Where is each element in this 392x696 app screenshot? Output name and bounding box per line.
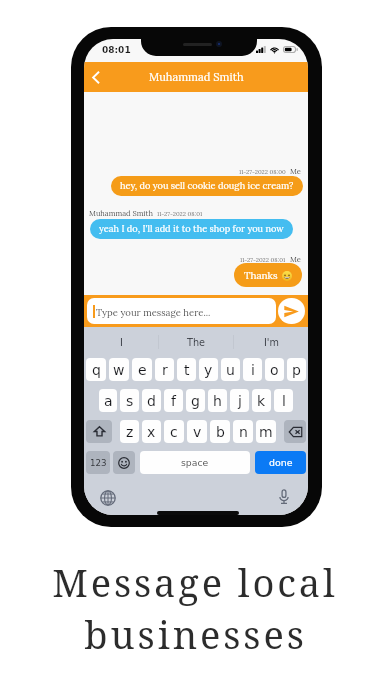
button[interactable]: z: [120, 420, 139, 443]
staticText: 11-27-2022 08:01: [240, 256, 286, 264]
button[interactable]: s: [120, 389, 139, 412]
staticText: Muhammad Smith: [89, 208, 153, 218]
staticText: k: [257, 393, 266, 409]
staticText: g: [191, 393, 200, 409]
other: Shift: [94, 426, 105, 437]
staticText: I'm: [264, 337, 279, 348]
staticText: done: [269, 457, 293, 468]
button[interactable]: Type your message here...: [87, 298, 276, 324]
staticText: y: [204, 362, 213, 378]
button[interactable]: r: [155, 358, 174, 381]
staticText: u: [226, 362, 235, 378]
staticText: a: [104, 393, 113, 409]
button[interactable]: y: [199, 358, 218, 381]
button[interactable]: i: [243, 358, 262, 381]
button[interactable]: l: [274, 389, 293, 412]
button[interactable]: g: [186, 389, 205, 412]
button[interactable]: Backspace: [284, 420, 306, 443]
button[interactable]: done: [255, 451, 306, 474]
staticText: Message local: [52, 556, 338, 608]
button[interactable]: x: [142, 420, 161, 443]
staticText: p: [292, 362, 301, 378]
staticText: m: [259, 424, 273, 440]
button[interactable]: t: [177, 358, 196, 381]
button[interactable]: Send: [278, 298, 305, 324]
button[interactable]: o: [265, 358, 284, 381]
button[interactable]: n: [233, 420, 253, 443]
button[interactable]: I'm: [234, 333, 308, 351]
button[interactable]: w: [109, 358, 129, 381]
button[interactable]: space: [140, 451, 250, 474]
staticText: q: [92, 362, 101, 378]
button[interactable]: Emoji: [113, 451, 135, 474]
staticText: The: [187, 337, 206, 348]
staticText: c: [170, 424, 178, 440]
button[interactable]: a: [99, 389, 117, 412]
staticText: Muhammad Smith: [149, 70, 244, 84]
staticText: 08:01: [102, 45, 131, 55]
button[interactable]: f: [164, 389, 183, 412]
button[interactable]: Dictate: [274, 487, 294, 507]
staticText: 11-27-2022 08:01: [157, 210, 203, 218]
staticText: z: [126, 424, 134, 440]
staticText: Type your message here...: [96, 306, 211, 318]
staticText: d: [147, 393, 156, 409]
staticText: x: [147, 424, 156, 440]
staticText: r: [162, 362, 168, 378]
staticText: w: [113, 362, 125, 378]
staticText: t: [184, 362, 190, 378]
button[interactable]: v: [187, 420, 207, 443]
staticText: Me: [290, 166, 301, 176]
staticText: i: [251, 362, 255, 378]
staticText: yeah I do, I'll add it to the shop for y…: [99, 223, 284, 235]
staticText: v: [193, 424, 202, 440]
button[interactable]: Back: [84, 65, 108, 89]
staticText: 123: [90, 458, 107, 468]
button[interactable]: Thanks: [234, 263, 302, 287]
staticText: f: [171, 393, 176, 409]
button[interactable]: c: [164, 420, 184, 443]
staticText: o: [270, 362, 279, 378]
button[interactable]: The: [159, 333, 233, 351]
button[interactable]: p: [287, 358, 306, 381]
staticText: Me: [290, 254, 301, 264]
button[interactable]: h: [208, 389, 227, 412]
button[interactable]: d: [142, 389, 161, 412]
other: Emoji: [118, 457, 130, 469]
button[interactable]: b: [210, 420, 230, 443]
staticText: h: [213, 393, 222, 409]
staticText: e: [138, 362, 147, 378]
staticText: I: [120, 337, 123, 348]
staticText: businesses: [84, 608, 307, 660]
button[interactable]: Change keyboard: [98, 488, 118, 508]
staticText: space: [181, 457, 209, 468]
button[interactable]: 123: [86, 451, 110, 474]
button[interactable]: I: [84, 333, 158, 351]
staticText: n: [239, 424, 248, 440]
button[interactable]: q: [86, 358, 106, 381]
staticText: Thanks: [244, 269, 278, 282]
staticText: j: [238, 393, 242, 409]
staticText: b: [216, 424, 225, 440]
button[interactable]: yeah I do, I'll add it to the shop for y…: [90, 219, 293, 239]
button[interactable]: e: [132, 358, 152, 381]
other: Backspace: [289, 427, 302, 437]
button[interactable]: Shift: [86, 420, 112, 443]
button[interactable]: u: [221, 358, 240, 381]
staticText: s: [126, 393, 134, 409]
staticText: hey, do you sell cookie dough ice cream?: [120, 180, 294, 192]
button[interactable]: k: [252, 389, 271, 412]
staticText: 11-27-2022 08:00: [239, 168, 286, 176]
button[interactable]: hey, do you sell cookie dough ice cream?: [111, 176, 303, 196]
button[interactable]: m: [256, 420, 276, 443]
button[interactable]: j: [230, 389, 249, 412]
staticText: l: [282, 393, 286, 409]
